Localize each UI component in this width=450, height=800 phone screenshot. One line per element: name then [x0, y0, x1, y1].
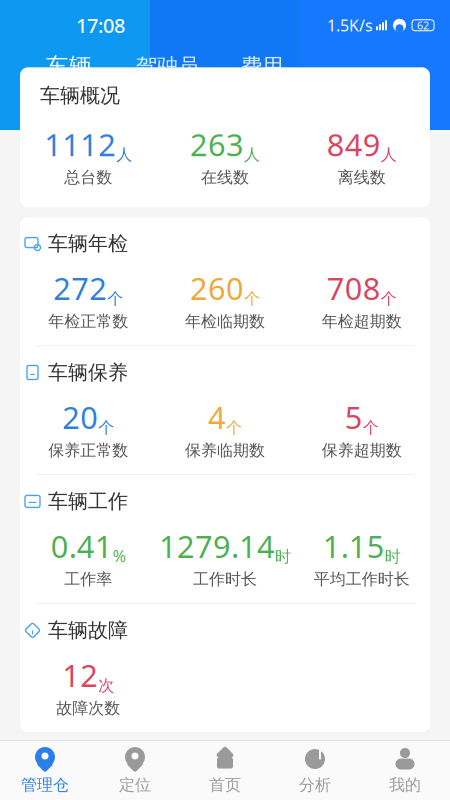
staticText: 故障次数: [56, 698, 120, 718]
staticText: 4: [208, 397, 226, 437]
staticText: 平均工作时长: [314, 569, 410, 589]
staticText: 车辆年检: [48, 231, 128, 256]
staticText: 我的: [389, 775, 421, 795]
staticText: 时: [385, 547, 401, 566]
staticText: 5: [345, 397, 363, 437]
staticText: 保养临期数: [185, 440, 265, 460]
staticText: 1279.14: [159, 526, 275, 566]
staticText: 车辆故障: [48, 618, 128, 643]
staticText: 1.5K/s: [327, 15, 373, 36]
staticText: 定位: [119, 775, 151, 795]
staticText: 年检正常数: [48, 312, 128, 331]
staticText: 工作时长: [193, 569, 257, 589]
staticText: %: [113, 545, 126, 566]
staticText: 1112: [44, 124, 116, 165]
staticText: 人: [116, 145, 132, 165]
staticText: 0.41: [51, 526, 113, 566]
staticText: 人: [381, 145, 397, 165]
button[interactable]: 分析: [270, 741, 360, 799]
staticText: 保养超期数: [322, 440, 402, 460]
staticText: 费用: [241, 53, 283, 80]
button[interactable]: 费用: [241, 53, 283, 88]
staticText: 在线数: [201, 168, 249, 187]
button[interactable]: 车辆: [46, 53, 92, 80]
staticText: 驾驶员: [136, 53, 199, 80]
staticText: 车辆工作: [48, 489, 128, 514]
staticText: 20: [62, 397, 98, 437]
staticText: 时: [275, 547, 291, 566]
button[interactable]: 驾驶员: [136, 53, 199, 88]
staticText: 个: [363, 418, 379, 437]
staticText: 个: [98, 418, 114, 437]
button[interactable]: 定位: [90, 741, 180, 799]
staticText: 1.15: [323, 526, 385, 566]
staticText: 个: [226, 418, 242, 437]
staticText: 年检临期数: [185, 312, 265, 331]
staticText: 708: [327, 268, 381, 308]
staticText: 车辆: [46, 53, 92, 80]
staticText: 保养正常数: [48, 440, 128, 460]
staticText: 总台数: [64, 168, 112, 187]
staticText: 离线数: [338, 168, 386, 187]
staticText: 车辆概况: [40, 83, 120, 108]
button[interactable]: 首页: [180, 741, 270, 799]
staticText: 分析: [299, 775, 331, 795]
staticText: 个: [381, 289, 397, 309]
staticText: 12: [62, 655, 98, 695]
button[interactable]: 我的: [360, 741, 450, 799]
staticText: 个: [244, 289, 260, 309]
staticText: 次: [98, 676, 114, 695]
staticText: 849: [327, 124, 381, 165]
staticText: 管理仓: [21, 775, 69, 795]
staticText: 个: [107, 289, 123, 309]
staticText: 人: [244, 145, 260, 165]
button[interactable]: 管理仓: [0, 741, 90, 799]
staticText: 260: [190, 268, 244, 308]
staticText: 年检超期数: [322, 312, 402, 331]
staticText: 263: [190, 124, 244, 165]
staticText: 工作率: [64, 569, 112, 589]
staticText: 62: [417, 18, 429, 32]
staticText: 车辆保养: [48, 360, 128, 385]
staticText: 首页: [209, 775, 241, 795]
staticText: 17:08: [76, 12, 125, 39]
staticText: 272: [53, 268, 107, 308]
